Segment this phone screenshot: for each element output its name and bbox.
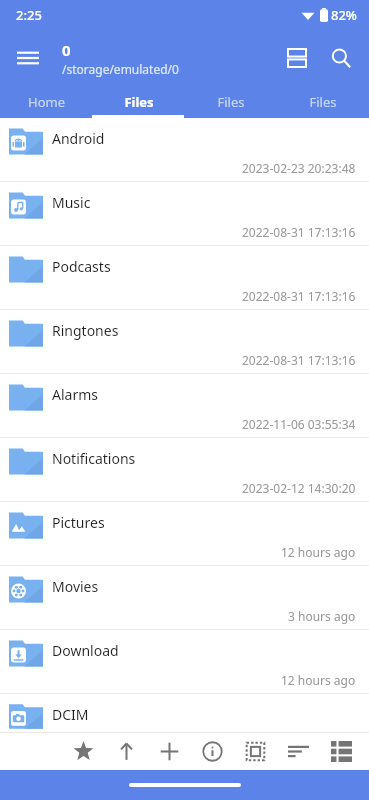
staticText: Home [28, 93, 65, 111]
staticText: Android [52, 129, 105, 148]
staticText: Pictures [52, 513, 105, 532]
button[interactable]: Alarms [0, 374, 369, 438]
button[interactable]: Add [148, 733, 191, 770]
button[interactable]: Download [0, 630, 369, 694]
staticText: Notifications [52, 449, 136, 468]
staticText: Files [217, 93, 245, 111]
button[interactable]: Select all [234, 733, 277, 770]
staticText: Movies [52, 577, 99, 596]
staticText: 0 [62, 40, 71, 60]
button[interactable]: Notifications [0, 438, 369, 502]
staticText: DCIM [52, 705, 89, 724]
button[interactable]: Move up [105, 733, 148, 770]
staticText: 2023-02-23 20:23:48 [242, 160, 356, 176]
staticText: Alarms [52, 385, 98, 404]
button[interactable]: Files [93, 86, 185, 118]
staticText: 12 hours ago [281, 544, 356, 560]
button[interactable]: Home [0, 86, 93, 118]
button[interactable]: Android [0, 118, 369, 182]
staticText: 3 hours ago [288, 608, 356, 624]
button[interactable]: Favorite [62, 733, 105, 770]
staticText: Files [124, 93, 154, 111]
staticText: Download [52, 641, 119, 660]
staticText: 2022-11-06 03:55:34 [242, 416, 356, 432]
staticText: 2023-02-12 14:30:20 [242, 480, 356, 496]
staticText: 82% [331, 6, 357, 24]
button[interactable]: Info [191, 733, 234, 770]
button[interactable]: Ringtones [0, 310, 369, 374]
button[interactable]: Pictures [0, 502, 369, 566]
staticText: Music [52, 193, 91, 212]
staticText: 2022-08-31 17:13:16 [242, 288, 356, 304]
staticText: Podcasts [52, 257, 111, 276]
staticText: 2:25 [16, 6, 42, 24]
button[interactable]: Search [319, 36, 363, 80]
button[interactable]: Split screen [275, 36, 319, 80]
staticText: Ringtones [52, 321, 119, 340]
button[interactable]: Menu [6, 36, 50, 80]
button[interactable]: Podcasts [0, 246, 369, 310]
staticText: 2022-08-31 17:13:16 [242, 352, 356, 368]
staticText: /storage/emulated/0 [62, 61, 179, 77]
button[interactable]: Sort [277, 733, 320, 770]
button[interactable]: Music [0, 182, 369, 246]
button[interactable]: Files [185, 86, 277, 118]
button[interactable]: Movies [0, 566, 369, 630]
button[interactable]: Files [277, 86, 369, 118]
button[interactable]: DCIM [0, 694, 369, 733]
staticText: 12 hours ago [281, 672, 356, 688]
staticText: 2022-08-31 17:13:16 [242, 224, 356, 240]
button[interactable]: View mode [320, 733, 363, 770]
staticText: Files [309, 93, 337, 111]
